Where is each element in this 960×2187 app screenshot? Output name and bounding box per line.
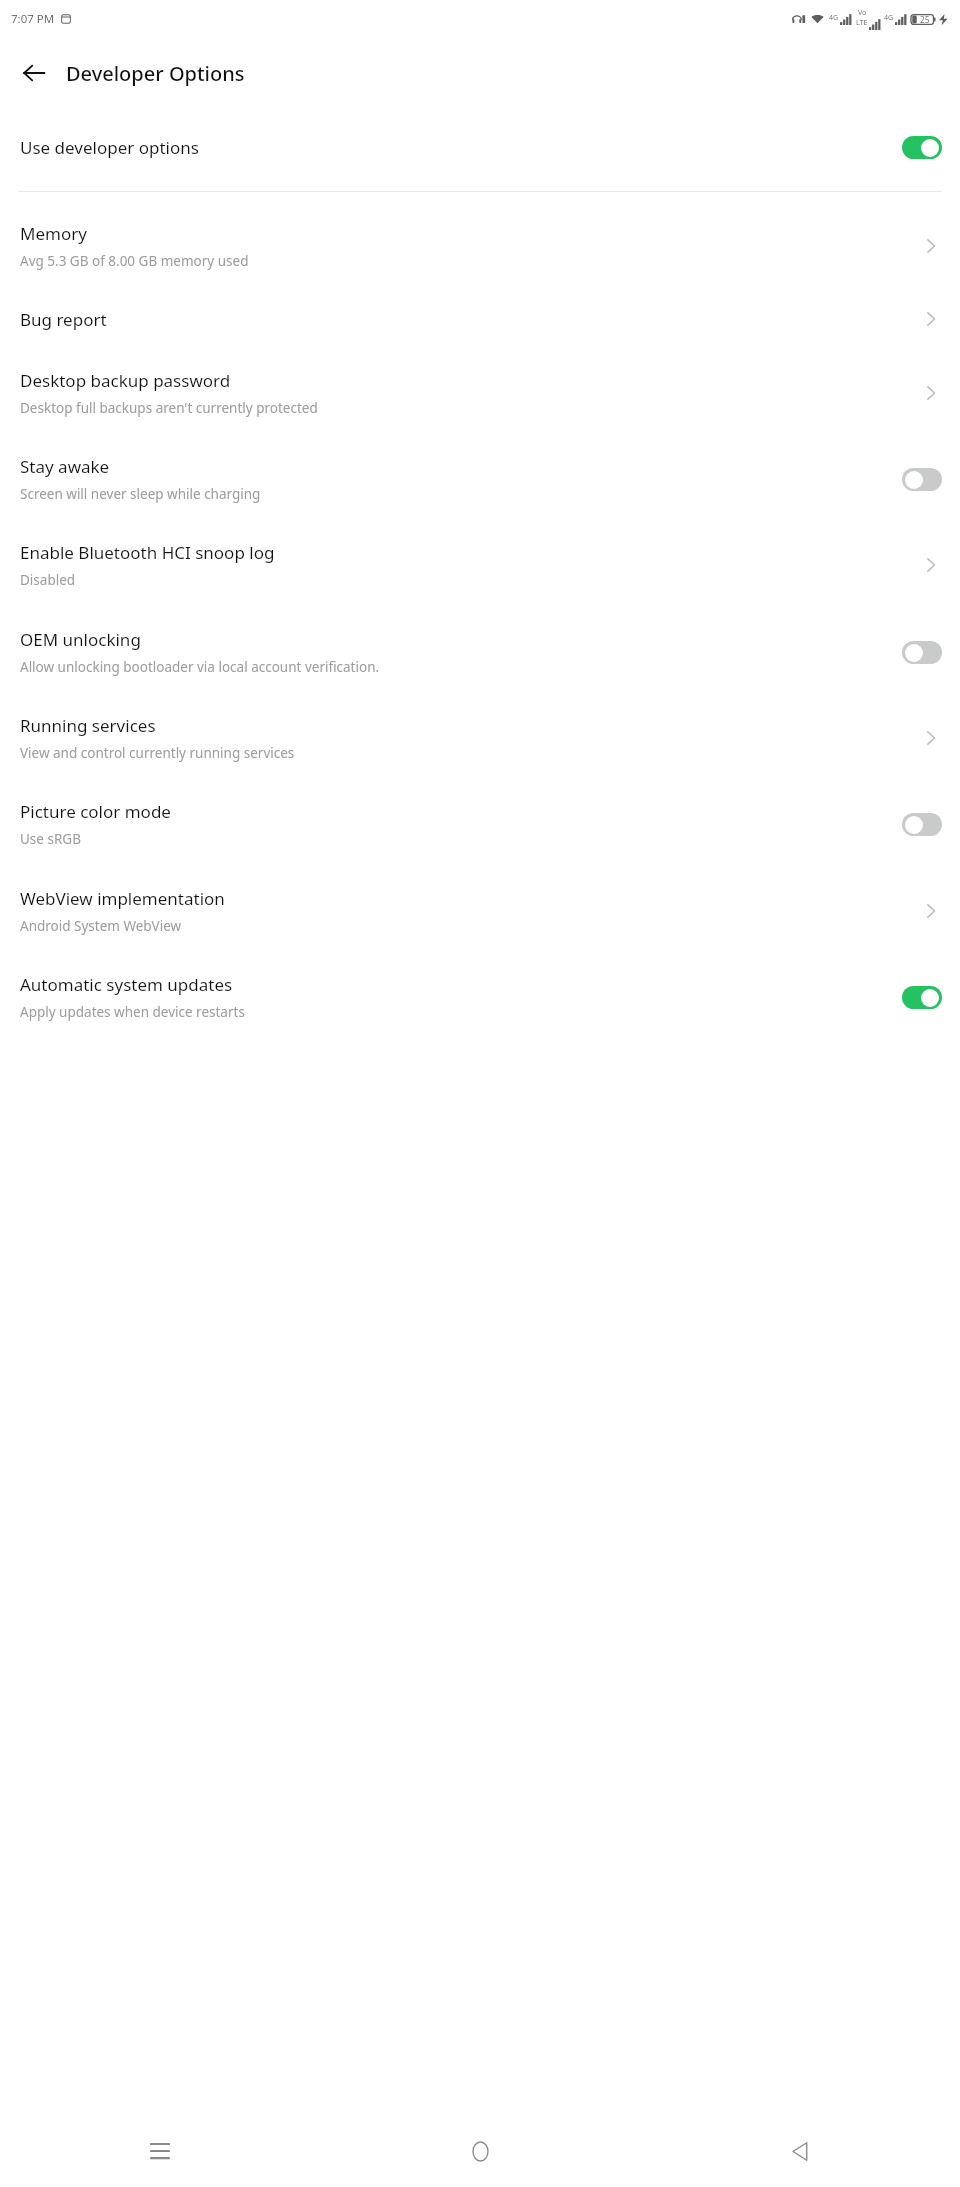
other: Open (920, 727, 942, 749)
staticText: Bug report (20, 308, 107, 331)
button[interactable]: Desktop backup password (0, 361, 960, 425)
staticText: 4G (884, 13, 894, 23)
staticText: Disabled (20, 571, 76, 589)
staticText: 25 (920, 14, 930, 26)
button[interactable]: Off (902, 813, 942, 836)
staticText: Android System WebView (20, 917, 182, 935)
staticText: Picture color mode (20, 800, 171, 823)
button[interactable]: Enable Bluetooth HCI snoop log (0, 533, 960, 597)
button[interactable]: Stay awake (0, 447, 960, 511)
button[interactable]: Home (320, 2123, 640, 2179)
staticText: Use developer options (20, 136, 199, 159)
staticText: Desktop full backups aren't currently pr… (20, 399, 318, 417)
button[interactable]: Running services (0, 706, 960, 770)
button[interactable]: On (902, 986, 942, 1009)
staticText: Developer Options (66, 60, 245, 87)
button[interactable]: Off (902, 641, 942, 664)
other: Open (920, 382, 942, 404)
staticText: Desktop backup password (20, 369, 231, 392)
button[interactable]: Back (12, 51, 56, 95)
staticText: Enable Bluetooth HCI snoop log (20, 541, 275, 564)
staticText: Use sRGB (20, 830, 81, 848)
staticText: Running services (20, 714, 156, 737)
other: Open (920, 235, 942, 257)
button[interactable]: Use developer options (0, 124, 960, 170)
staticText: WebView implementation (20, 887, 225, 910)
button[interactable]: Back (640, 2123, 960, 2179)
staticText: Vo (858, 8, 867, 18)
button[interactable]: WebView implementation (0, 879, 960, 943)
button[interactable]: Memory (0, 214, 960, 278)
staticText: Memory (20, 222, 87, 245)
button[interactable]: Bug report (0, 301, 960, 337)
other: Open (920, 900, 942, 922)
staticText: LTE (856, 18, 868, 28)
button[interactable]: On (902, 136, 942, 159)
staticText: Apply updates when device restarts (20, 1003, 245, 1021)
staticText: 7:07 PM (11, 11, 55, 27)
staticText: Screen will never sleep while charging (20, 485, 261, 503)
staticText: Automatic system updates (20, 973, 233, 996)
other: Open (920, 308, 942, 330)
button[interactable]: Picture color mode (0, 792, 960, 856)
staticText: View and control currently running servi… (20, 744, 295, 762)
button[interactable]: Recents (0, 2123, 320, 2179)
other: Open (920, 554, 942, 576)
staticText: OEM unlocking (20, 628, 141, 651)
button[interactable]: Off (902, 468, 942, 491)
staticText: Allow unlocking bootloader via local acc… (20, 658, 380, 676)
staticText: 4G (829, 13, 839, 23)
staticText: Stay awake (20, 455, 110, 478)
staticText: Avg 5.3 GB of 8.00 GB memory used (20, 252, 249, 270)
button[interactable]: Automatic system updates (0, 965, 960, 1029)
button[interactable]: OEM unlocking (0, 620, 960, 684)
